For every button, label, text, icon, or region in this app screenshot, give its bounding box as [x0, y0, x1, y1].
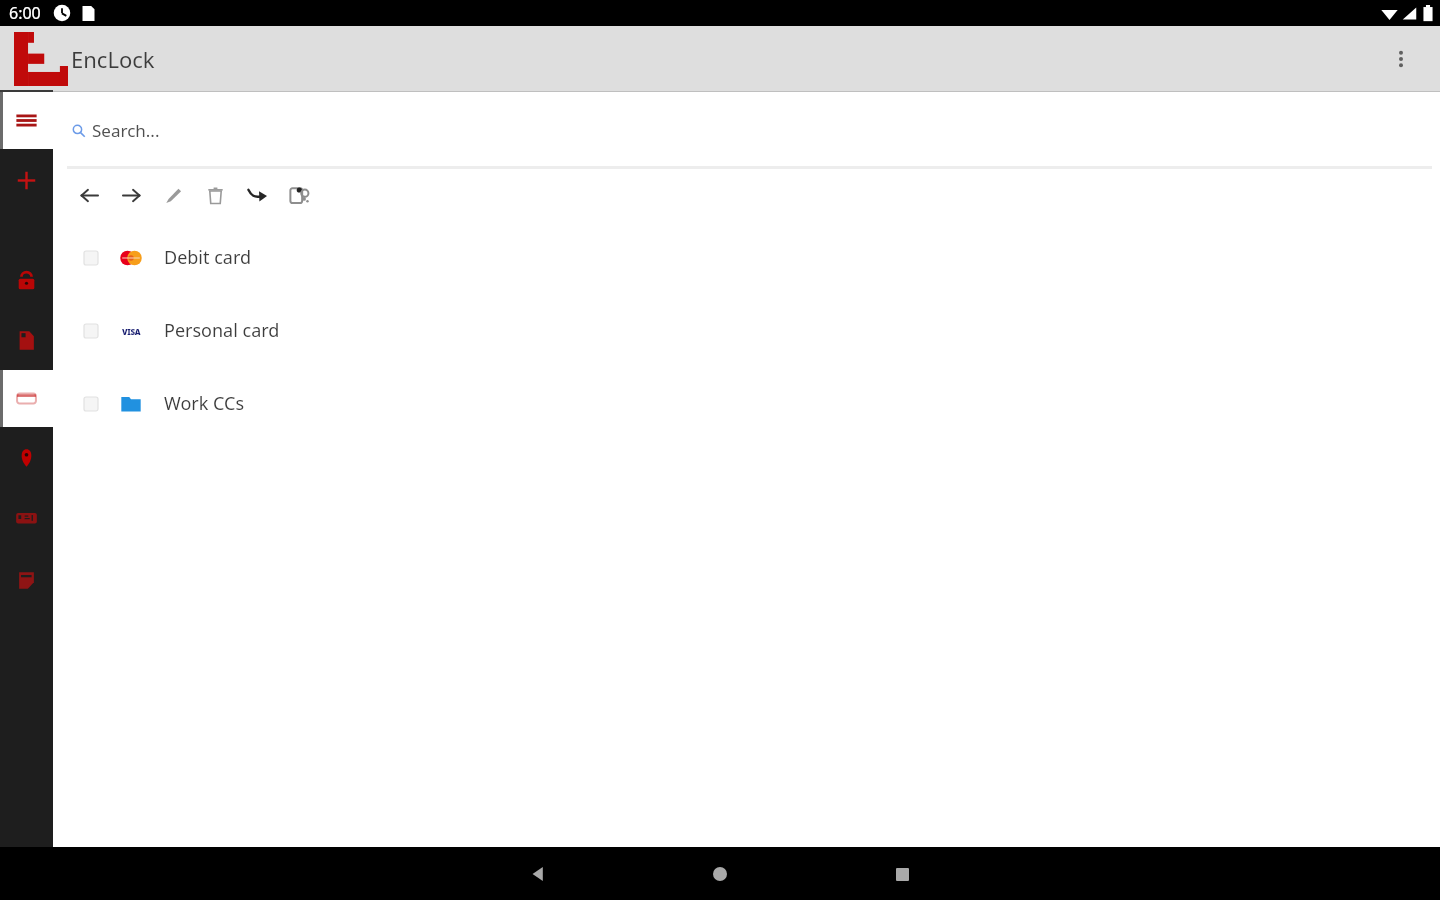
button[interactable]: Home — [696, 850, 744, 898]
button[interactable]: Recents — [878, 850, 926, 898]
button[interactable]: Back — [77, 183, 102, 208]
button[interactable]: More options — [1383, 41, 1419, 77]
button[interactable]: Move — [245, 183, 270, 208]
button[interactable]: Passwords — [0, 250, 53, 310]
staticText: EncLock — [71, 44, 155, 74]
button[interactable]: Addresses — [0, 427, 53, 487]
button[interactable]: Delete — [203, 183, 228, 208]
button[interactable]: Work CCs — [53, 367, 1440, 440]
staticText: VISA — [122, 326, 141, 337]
button[interactable]: Add — [0, 149, 53, 211]
button[interactable]: Back — [514, 850, 562, 898]
button[interactable]: Documents — [0, 549, 53, 611]
staticText: Debit card — [164, 245, 252, 270]
button[interactable]: Debit card — [53, 221, 1440, 294]
staticText: Personal card — [164, 318, 280, 343]
staticText: 6:00 — [9, 2, 41, 24]
button[interactable]: Forward — [119, 183, 144, 208]
button[interactable]: VISA — [53, 294, 1440, 367]
staticText: Search... — [92, 119, 160, 142]
button[interactable]: New folder — [287, 183, 312, 208]
button[interactable]: Menu — [0, 92, 53, 149]
staticText: Work CCs — [164, 391, 245, 416]
button[interactable]: Edit — [161, 183, 186, 208]
button[interactable]: Identities — [0, 487, 53, 549]
button[interactable]: Search... — [53, 92, 1440, 169]
button[interactable]: Cards — [0, 370, 53, 427]
button[interactable]: Notes — [0, 310, 53, 370]
